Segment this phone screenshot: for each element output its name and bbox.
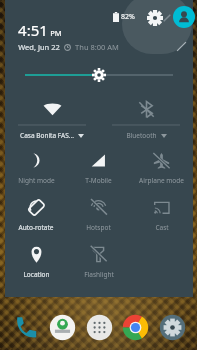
button[interactable]: Settings <box>143 6 167 30</box>
button[interactable]: Phone <box>11 312 41 342</box>
staticText: Bluetooth <box>126 131 157 140</box>
button[interactable]: Google Pay <box>47 312 77 342</box>
staticText: Night mode <box>18 176 55 185</box>
button[interactable]: Apps <box>84 312 114 342</box>
button[interactable]: T-Mobile <box>67 144 130 191</box>
button[interactable]: Night mode <box>5 144 67 191</box>
staticText: Airplane mode <box>139 176 184 185</box>
staticText: Cast <box>155 223 169 232</box>
button[interactable]: Settings <box>157 312 187 342</box>
button[interactable]: Location <box>5 238 67 285</box>
staticText: T-Mobile <box>85 176 112 185</box>
staticText: Thu 8:00 AM <box>75 42 119 52</box>
staticText: 4:51 <box>18 20 48 40</box>
button[interactable]: User profile <box>173 6 195 28</box>
staticText: Casa Bonita FAS... <box>20 131 74 140</box>
button[interactable]: Edit <box>173 38 189 54</box>
staticText: Location <box>23 270 50 279</box>
button[interactable]: Brightness <box>5 60 193 90</box>
button[interactable]: Casa Bonita FAS... <box>5 94 99 144</box>
staticText: Wed, Jun 22 <box>18 42 60 52</box>
staticText: Flashlight <box>84 270 114 279</box>
button[interactable]: Bluetooth <box>99 94 193 144</box>
button[interactable]: Flashlight <box>67 238 130 285</box>
button[interactable]: Airplane mode <box>130 144 193 191</box>
button[interactable]: Cast <box>130 191 193 238</box>
button[interactable]: Hotspot <box>67 191 130 238</box>
staticText: Auto-rotate <box>18 223 54 232</box>
button[interactable]: Chrome <box>120 312 150 342</box>
staticText: PM <box>50 28 62 38</box>
staticText: 82% <box>121 12 135 22</box>
button[interactable]: Auto-rotate <box>5 191 67 238</box>
staticText: Hotspot <box>86 223 111 232</box>
